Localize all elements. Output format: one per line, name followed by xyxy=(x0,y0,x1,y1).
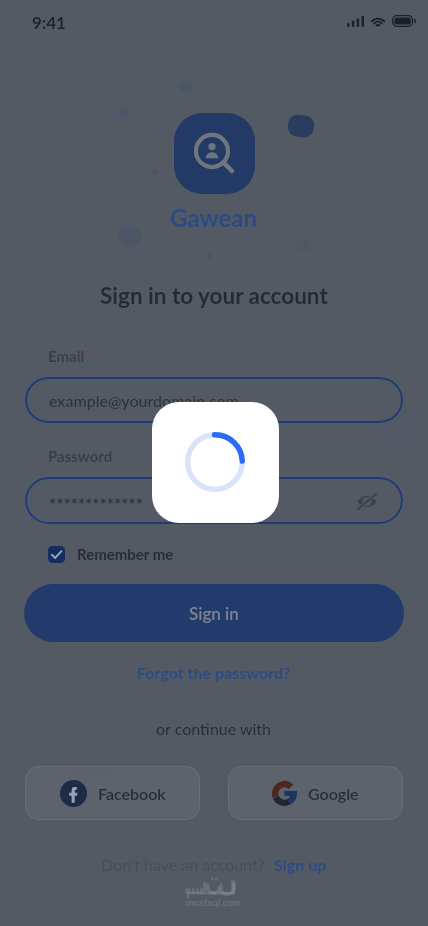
staticText: Sign in xyxy=(189,603,239,623)
staticText: Google xyxy=(308,784,359,803)
staticText: Email xyxy=(48,347,85,365)
staticText: ************* xyxy=(49,494,143,514)
button[interactable]: Show password xyxy=(355,489,379,513)
staticText: Gawean xyxy=(170,203,258,232)
staticText: or continue with xyxy=(156,719,272,738)
button[interactable]: Sign in xyxy=(24,584,404,642)
button[interactable]: Remember me xyxy=(48,545,174,563)
staticText: * xyxy=(85,347,91,363)
staticText: * xyxy=(113,447,119,463)
button[interactable]: Google xyxy=(228,766,403,820)
staticText: 9:41 xyxy=(32,12,66,32)
staticText: Remember me xyxy=(77,545,174,563)
button[interactable]: Sign up xyxy=(274,855,327,874)
staticText: Password xyxy=(48,447,113,465)
button[interactable]: example@yourdomain.com xyxy=(25,377,403,423)
staticText: mostaql.com xyxy=(186,897,242,908)
button[interactable]: Forgot the password? xyxy=(132,658,296,687)
button[interactable]: ************* xyxy=(25,477,403,524)
staticText: Don't have an account? xyxy=(101,855,265,874)
staticText: Facebook xyxy=(98,784,166,803)
button[interactable]: Facebook xyxy=(25,766,200,820)
staticText: Sign in to your account xyxy=(100,282,328,309)
staticText: example@yourdomain.com xyxy=(49,391,239,410)
